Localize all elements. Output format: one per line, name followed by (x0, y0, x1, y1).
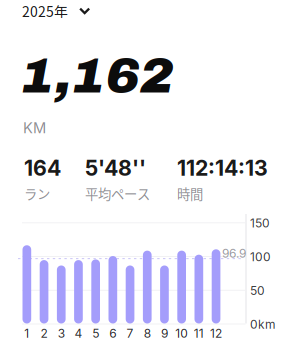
staticText: 50 (250, 283, 265, 298)
staticText: 5'48'' (85, 155, 146, 181)
staticText: 96.9 (222, 246, 246, 261)
staticText: 6 (109, 326, 116, 340)
staticText: 7 (126, 326, 133, 340)
staticText: 10 (175, 326, 188, 340)
staticText: ラン (24, 184, 50, 203)
staticText: KM (23, 119, 46, 137)
staticText: 112:14:13 (177, 155, 268, 181)
staticText: 164 (24, 155, 61, 181)
staticText: 平均ペース (85, 184, 150, 203)
staticText: 11 (194, 326, 204, 340)
staticText: 9 (161, 326, 168, 340)
staticText: 150 (250, 216, 270, 230)
button[interactable]: 2025年 (22, 2, 90, 20)
staticText: 0km (250, 317, 276, 331)
staticText: 1 (24, 326, 29, 340)
staticText: 4 (74, 326, 82, 340)
staticText: 5 (92, 326, 99, 340)
staticText: 1,162 (21, 48, 174, 103)
staticText: 3 (58, 326, 65, 340)
staticText: 2 (41, 326, 48, 340)
staticText: 2025年 (22, 1, 68, 21)
staticText: 100 (250, 249, 271, 264)
staticText: 8 (144, 326, 151, 340)
staticText: 12 (210, 326, 222, 340)
staticText: 時間 (177, 184, 203, 203)
